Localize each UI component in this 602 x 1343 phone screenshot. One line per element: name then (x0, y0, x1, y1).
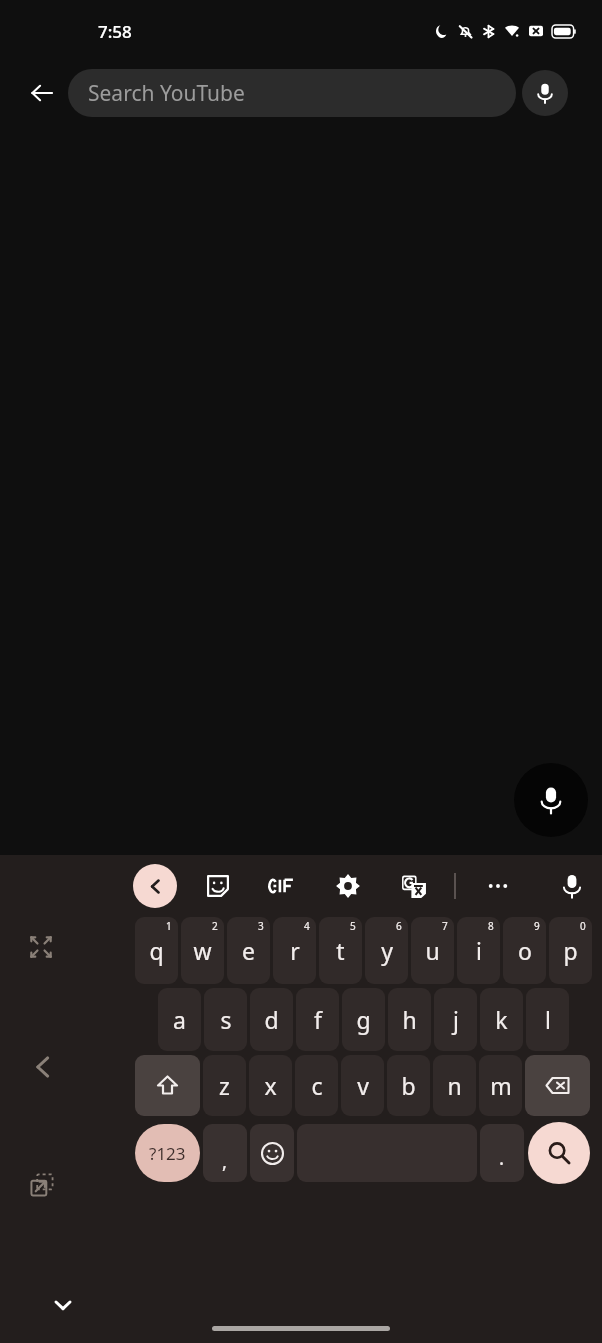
button[interactable]: GIF (260, 864, 304, 908)
staticText: e (242, 935, 255, 966)
staticText: b (401, 1070, 416, 1101)
button[interactable]: t (319, 917, 362, 984)
staticText: l (545, 1004, 551, 1035)
staticText: w (193, 935, 212, 966)
staticText: 7 (442, 919, 448, 933)
button[interactable]: k (480, 988, 523, 1051)
staticText: u (425, 935, 440, 966)
staticText: z (219, 1070, 230, 1101)
button[interactable]: Translate (392, 864, 436, 908)
button[interactable]: s (204, 988, 247, 1051)
staticText: ?123 (149, 1142, 186, 1165)
staticText: 4 (304, 919, 310, 933)
button[interactable]: f (296, 988, 339, 1051)
button[interactable]: Close toolbar (133, 864, 177, 908)
staticText: t (336, 935, 345, 966)
button[interactable]: More options (476, 864, 520, 908)
button[interactable]: h (388, 988, 431, 1051)
staticText: p (563, 935, 578, 966)
button[interactable]: u (411, 917, 454, 984)
button[interactable]: a (158, 988, 201, 1051)
button[interactable]: j (434, 988, 477, 1051)
button[interactable]: Voice typing (550, 864, 594, 908)
staticText: x (264, 1070, 277, 1101)
staticText: v (357, 1070, 369, 1101)
button[interactable]: Search YouTube (68, 69, 516, 117)
staticText: 5 (350, 919, 356, 933)
button[interactable]: Voice search (514, 763, 588, 837)
button[interactable]: o (503, 917, 546, 984)
staticText: . (499, 1145, 505, 1171)
button[interactable]: v (341, 1055, 384, 1116)
button[interactable]: b (387, 1055, 430, 1116)
button[interactable]: z (203, 1055, 246, 1116)
button[interactable]: . (480, 1124, 524, 1182)
staticText: a (173, 1004, 186, 1035)
button[interactable]: x (249, 1055, 292, 1116)
staticText: o (518, 935, 532, 966)
button[interactable]: g (342, 988, 385, 1051)
staticText: q (149, 935, 164, 966)
button[interactable]: Emoji (250, 1124, 294, 1182)
staticText: y (381, 935, 393, 966)
button[interactable]: Previous (30, 1037, 60, 1097)
button[interactable]: Expand keyboard (30, 917, 60, 977)
staticText: 2 (212, 919, 218, 933)
button[interactable]: q (135, 917, 178, 984)
button[interactable]: Hide keyboard (40, 1282, 86, 1328)
staticText: 7:58 (98, 20, 132, 43)
staticText: m (490, 1070, 512, 1101)
button[interactable]: d (250, 988, 293, 1051)
button[interactable]: Backspace (525, 1055, 590, 1116)
button[interactable]: y (365, 917, 408, 984)
staticText: k (495, 1004, 508, 1035)
button[interactable]: ?123 (135, 1124, 200, 1182)
button[interactable]: Shift (135, 1055, 200, 1116)
button[interactable]: m (479, 1055, 522, 1116)
staticText: 9 (534, 919, 540, 933)
staticText: f (314, 1004, 322, 1035)
button[interactable]: c (295, 1055, 338, 1116)
staticText: c (311, 1070, 323, 1101)
staticText: n (447, 1070, 462, 1101)
staticText: 1 (166, 919, 172, 933)
button[interactable]: Voice input (522, 70, 568, 116)
staticText: r (290, 935, 300, 966)
staticText: 8 (488, 919, 494, 933)
button[interactable]: e (227, 917, 270, 984)
button[interactable]: Stickers (196, 864, 240, 908)
staticText: j (453, 1004, 459, 1035)
staticText: i (476, 935, 482, 966)
button[interactable]: l (526, 988, 569, 1051)
button[interactable]: , (203, 1124, 247, 1182)
button[interactable]: r (273, 917, 316, 984)
button[interactable]: i (457, 917, 500, 984)
staticText: 0 (580, 919, 586, 933)
button[interactable]: Search (528, 1122, 590, 1184)
staticText: s (220, 1004, 232, 1035)
staticText: 6 (396, 919, 402, 933)
staticText: h (402, 1004, 417, 1035)
button[interactable]: w (181, 917, 224, 984)
staticText: , (222, 1148, 228, 1174)
staticText: 3 (258, 919, 264, 933)
button[interactable]: Settings (326, 864, 370, 908)
button[interactable]: Pop out (30, 1155, 60, 1215)
button[interactable]: n (433, 1055, 476, 1116)
staticText: d (264, 1004, 279, 1035)
staticText: g (356, 1004, 371, 1035)
button[interactable]: p (549, 917, 592, 984)
staticText: Search YouTube (88, 79, 245, 108)
button[interactable]: Back (18, 69, 66, 117)
